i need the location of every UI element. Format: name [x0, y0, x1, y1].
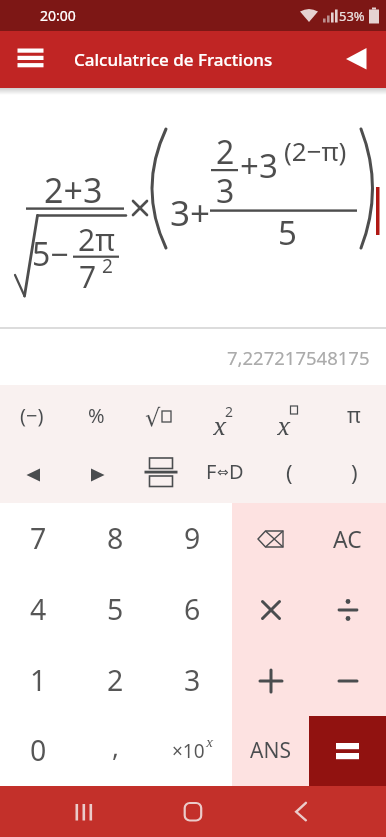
staticText: 2: [216, 130, 235, 170]
button[interactable]: [278, 788, 326, 834]
button[interactable]: √: [129, 386, 193, 445]
button[interactable]: [232, 503, 309, 574]
button[interactable]: [8, 40, 54, 80]
button[interactable]: [309, 716, 386, 786]
button[interactable]: 9: [154, 503, 231, 574]
staticText: D: [229, 458, 244, 485]
staticText: 6: [184, 590, 201, 629]
button[interactable]: ANS: [232, 715, 309, 786]
button[interactable]: %: [64, 386, 128, 445]
button[interactable]: F: [193, 442, 257, 501]
button[interactable]: 5: [77, 574, 154, 645]
staticText: 5: [278, 210, 297, 252]
staticText: √: [145, 404, 161, 430]
staticText: 7: [30, 519, 47, 558]
staticText: 4: [30, 590, 47, 629]
staticText: 5: [107, 590, 124, 629]
button[interactable]: x: [193, 386, 257, 445]
button[interactable]: [232, 574, 309, 645]
staticText: (2−π): [284, 133, 347, 167]
staticText: 5−: [32, 232, 69, 276]
button[interactable]: AC: [309, 503, 386, 574]
button[interactable]: [232, 645, 309, 716]
button[interactable]: ,: [77, 711, 154, 782]
staticText: 2: [102, 253, 113, 279]
staticText: 3: [216, 169, 235, 209]
button[interactable]: [309, 645, 386, 716]
button[interactable]: π: [322, 386, 386, 445]
staticText: AC: [333, 523, 362, 554]
staticText: ): [351, 457, 358, 487]
button[interactable]: 4: [0, 574, 77, 645]
staticText: %: [88, 402, 105, 429]
button[interactable]: [332, 37, 380, 83]
staticText: ⇔: [217, 464, 229, 480]
button[interactable]: [65, 445, 129, 504]
staticText: (: [286, 457, 293, 487]
staticText: 20:00: [40, 6, 76, 25]
staticText: 1: [30, 661, 47, 700]
staticText: 9: [184, 519, 201, 558]
button[interactable]: x: [257, 386, 321, 445]
button[interactable]: (−): [0, 386, 64, 445]
staticText: 7: [79, 256, 97, 296]
button[interactable]: 8: [77, 503, 154, 574]
staticText: F: [206, 458, 217, 485]
button[interactable]: [60, 788, 108, 834]
button[interactable]: ×10: [154, 715, 231, 786]
button[interactable]: [129, 442, 193, 501]
staticText: ,: [112, 729, 119, 764]
staticText: x: [277, 409, 291, 435]
staticText: ×10: [172, 738, 205, 764]
button[interactable]: (: [257, 442, 321, 501]
staticText: x: [213, 409, 227, 435]
button[interactable]: 1: [0, 645, 77, 716]
button[interactable]: [309, 574, 386, 645]
button[interactable]: ): [322, 442, 386, 501]
button[interactable]: 2: [77, 645, 154, 716]
staticText: 53%: [339, 7, 365, 25]
staticText: 2π: [78, 219, 115, 259]
button[interactable]: 6: [154, 574, 231, 645]
staticText: +3: [240, 143, 278, 185]
staticText: 3: [184, 661, 201, 700]
button[interactable]: [169, 788, 217, 834]
staticText: 8: [107, 519, 124, 558]
staticText: 2: [107, 661, 124, 700]
staticText: Calculatrice de Fractions: [74, 48, 273, 71]
staticText: 2+3: [44, 167, 103, 211]
staticText: 3+: [170, 189, 211, 233]
staticText: ANS: [250, 736, 291, 765]
button[interactable]: 3: [154, 645, 231, 716]
staticText: (−): [20, 402, 44, 429]
staticText: π: [347, 401, 361, 430]
staticText: 7,227217548175: [227, 345, 370, 367]
button[interactable]: 7: [0, 503, 77, 574]
staticText: 0: [30, 731, 47, 770]
button[interactable]: [1, 445, 65, 504]
button[interactable]: 0: [0, 715, 77, 786]
staticText: 2: [225, 402, 234, 421]
staticText: x: [206, 733, 214, 751]
